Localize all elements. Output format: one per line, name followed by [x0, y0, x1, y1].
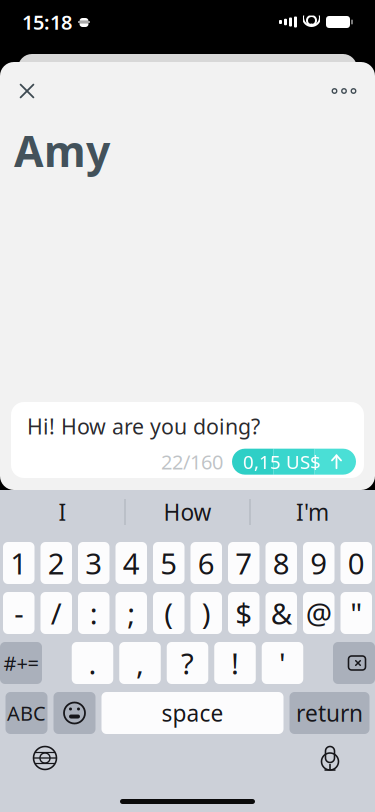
button[interactable]: , [119, 642, 161, 684]
button[interactable]: 2 [40, 542, 72, 584]
staticText: : [90, 593, 98, 632]
button[interactable]: How [125, 490, 249, 534]
staticText: - [14, 593, 23, 632]
button[interactable]: ; [115, 592, 147, 634]
button[interactable]: . [72, 642, 113, 684]
staticText: I'm [296, 497, 329, 527]
button[interactable]: ? [167, 642, 208, 684]
staticText: return [296, 698, 363, 728]
button[interactable]: ) [190, 592, 222, 634]
button[interactable]: ( [153, 592, 184, 634]
button[interactable]: 6 [190, 542, 222, 584]
staticText: 5 [160, 543, 177, 582]
button[interactable]: 0 [340, 542, 372, 584]
button[interactable]: 9 [303, 542, 334, 584]
staticText: 4 [123, 543, 140, 582]
button[interactable]: 4 [115, 542, 147, 584]
staticText: 1 [10, 543, 27, 582]
button[interactable]: #+= [0, 642, 42, 684]
staticText: 0,15 US$ [243, 449, 321, 474]
button[interactable]: More options [327, 78, 361, 104]
button[interactable]: 0,15 US$ [232, 449, 356, 475]
button[interactable]: I [0, 490, 124, 534]
staticText: 22/160 [161, 448, 223, 475]
staticText: . [88, 643, 96, 682]
staticText: ! [231, 643, 239, 682]
button[interactable]: space [101, 692, 283, 734]
staticText: ) [202, 593, 211, 632]
staticText: 15:18 [22, 9, 72, 35]
button[interactable]: 3 [78, 542, 109, 584]
button[interactable]: Delete [333, 642, 375, 684]
staticText: 0 [348, 543, 365, 582]
staticText: $ [235, 593, 252, 632]
button[interactable]: " [340, 592, 372, 634]
button[interactable]: 7 [228, 542, 259, 584]
staticText: 8 [273, 543, 290, 582]
button[interactable]: - [3, 592, 34, 634]
staticText: ; [127, 593, 135, 632]
button[interactable]: ABC [5, 692, 47, 734]
staticText: 9 [310, 543, 327, 582]
button[interactable]: & [265, 592, 297, 634]
button[interactable]: 1 [3, 542, 34, 584]
button[interactable]: : [78, 592, 109, 634]
staticText: ( [164, 593, 173, 632]
staticText: How [163, 497, 211, 527]
staticText: Hi! How are you doing? [27, 412, 260, 440]
button[interactable]: @ [303, 592, 334, 634]
staticText: 6 [198, 543, 215, 582]
staticText: ' [279, 643, 286, 682]
staticText: & [271, 593, 292, 632]
button[interactable]: return [289, 692, 369, 734]
staticText: 3 [85, 543, 102, 582]
button[interactable]: / [40, 592, 72, 634]
button[interactable]: ' [262, 642, 303, 684]
staticText: / [51, 593, 62, 632]
staticText: I [58, 497, 66, 527]
button[interactable]: $ [228, 592, 259, 634]
staticText: ABC [7, 700, 46, 726]
staticText: @ [306, 593, 332, 632]
button[interactable]: Dictation [317, 744, 343, 772]
button[interactable]: 5 [153, 542, 184, 584]
staticText: , [136, 643, 144, 682]
button[interactable]: 8 [265, 542, 297, 584]
button[interactable]: Emoji [53, 692, 95, 734]
button[interactable]: ! [214, 642, 256, 684]
staticText: space [161, 698, 223, 728]
staticText: ? [181, 643, 194, 682]
staticText: 7 [235, 543, 252, 582]
staticText: " [350, 593, 362, 632]
button[interactable]: Close [14, 78, 40, 104]
button[interactable]: Next keyboard [32, 745, 58, 771]
staticText: #+= [3, 650, 38, 676]
staticText: Amy [14, 122, 110, 179]
staticText: 2 [48, 543, 65, 582]
button[interactable]: I'm [250, 490, 374, 534]
